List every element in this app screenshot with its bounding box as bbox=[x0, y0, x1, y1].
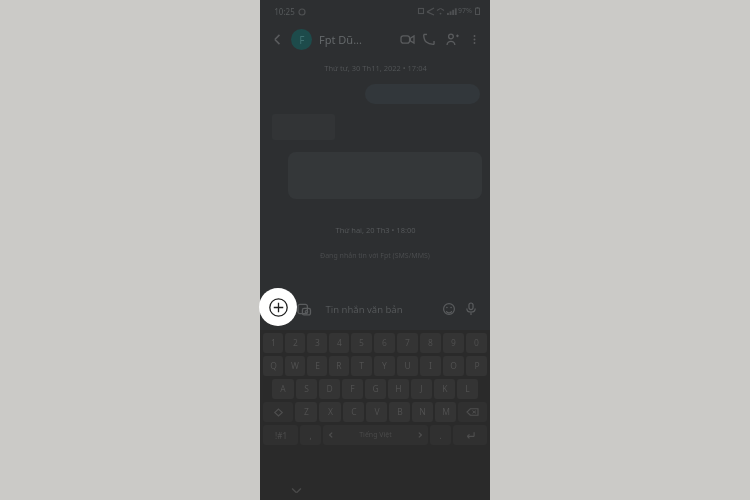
button[interactable]: 4 bbox=[329, 333, 349, 353]
staticText: R bbox=[336, 360, 342, 372]
button[interactable]: M bbox=[435, 402, 456, 422]
staticText: L bbox=[465, 383, 470, 395]
staticText: 0 bbox=[474, 337, 479, 349]
button[interactable]: F bbox=[291, 29, 312, 50]
staticText: Y bbox=[382, 360, 387, 372]
button[interactable]: K bbox=[434, 379, 455, 399]
staticText: C bbox=[351, 406, 357, 418]
staticText: F bbox=[350, 383, 355, 395]
button[interactable]: V bbox=[366, 402, 387, 422]
button[interactable]: Add attachment bbox=[259, 288, 297, 326]
button[interactable]: P bbox=[466, 356, 487, 376]
staticText: K bbox=[442, 383, 448, 395]
button[interactable]: C bbox=[343, 402, 364, 422]
staticText: 2 bbox=[293, 337, 298, 349]
button[interactable]: Emoji bbox=[438, 298, 460, 320]
staticText: Fpt Dũ... bbox=[319, 32, 362, 47]
button[interactable]: I bbox=[420, 356, 441, 376]
staticText: 10:25 bbox=[274, 6, 295, 17]
button[interactable]: Hide keyboard bbox=[287, 481, 305, 499]
staticText: B bbox=[397, 406, 403, 418]
button[interactable]: Gallery bbox=[293, 298, 315, 320]
button[interactable]: Voice input bbox=[460, 298, 482, 320]
button[interactable]: T bbox=[351, 356, 372, 376]
button[interactable]: L bbox=[457, 379, 478, 399]
button[interactable]: A bbox=[272, 379, 294, 399]
button[interactable]: Back bbox=[266, 28, 288, 50]
button[interactable]: 7 bbox=[397, 333, 418, 353]
staticText: Z bbox=[304, 406, 309, 418]
button[interactable]: 3 bbox=[307, 333, 327, 353]
button[interactable]: Add people bbox=[440, 27, 464, 51]
staticText: O bbox=[450, 360, 457, 372]
staticText: 9 bbox=[451, 337, 456, 349]
button[interactable]: Y bbox=[374, 356, 395, 376]
button[interactable]: Tin nhắn văn bản bbox=[325, 303, 438, 316]
button[interactable]: Fpt Dũ... bbox=[319, 32, 362, 47]
staticText: 1 bbox=[271, 337, 276, 349]
button[interactable]: G bbox=[365, 379, 386, 399]
button[interactable]: Call bbox=[418, 28, 440, 50]
button[interactable]: D bbox=[319, 379, 340, 399]
button[interactable]: Shift bbox=[263, 402, 293, 422]
staticText: Thứ hai, 20 Th3 • 18:00 bbox=[335, 225, 416, 235]
button[interactable]: N bbox=[412, 402, 433, 422]
button[interactable]: B bbox=[389, 402, 410, 422]
staticText: Q bbox=[270, 360, 277, 372]
button[interactable]: Enter bbox=[453, 425, 487, 445]
staticText: F bbox=[299, 33, 305, 47]
button[interactable]: More options bbox=[464, 29, 484, 49]
button[interactable]: O bbox=[443, 356, 464, 376]
staticText: G bbox=[372, 383, 379, 395]
button[interactable]: Add bbox=[268, 298, 290, 320]
staticText: J bbox=[420, 383, 423, 395]
button[interactable]: U bbox=[397, 356, 418, 376]
button[interactable]: S bbox=[296, 379, 317, 399]
staticText: !#1 bbox=[275, 430, 287, 441]
button[interactable]: 9 bbox=[443, 333, 464, 353]
staticText: A bbox=[280, 383, 286, 395]
staticText: D bbox=[326, 383, 333, 395]
staticText: 7 bbox=[405, 337, 410, 349]
staticText: 6 bbox=[382, 337, 387, 349]
staticText: W bbox=[291, 360, 299, 372]
staticText: 97% bbox=[458, 6, 472, 16]
staticText: . bbox=[439, 430, 442, 441]
staticText: U bbox=[404, 360, 411, 372]
staticText: Tin nhắn văn bản bbox=[325, 303, 403, 316]
staticText: Thứ tư, 30 Th11, 2022 • 17:04 bbox=[324, 63, 427, 73]
button[interactable]: 6 bbox=[374, 333, 395, 353]
staticText: X bbox=[328, 406, 333, 418]
staticText: H bbox=[395, 383, 402, 395]
button[interactable]: 5 bbox=[351, 333, 372, 353]
button[interactable]: H bbox=[388, 379, 409, 399]
staticText: P bbox=[474, 360, 480, 372]
staticText: N bbox=[419, 406, 426, 418]
button[interactable]: J bbox=[411, 379, 432, 399]
button[interactable]: Tiếng Việt bbox=[323, 425, 428, 445]
button[interactable]: 1 bbox=[263, 333, 283, 353]
staticText: 8 bbox=[428, 337, 433, 349]
button[interactable]: 8 bbox=[420, 333, 441, 353]
staticText: 4 bbox=[337, 337, 342, 349]
button[interactable]: !#1 bbox=[263, 425, 298, 445]
button[interactable]: Backspace bbox=[458, 402, 487, 422]
button[interactable]: Q bbox=[263, 356, 283, 376]
button[interactable]: X bbox=[319, 402, 341, 422]
button[interactable]: Z bbox=[295, 402, 317, 422]
button[interactable]: 0 bbox=[466, 333, 487, 353]
button[interactable]: F bbox=[342, 379, 363, 399]
staticText: M bbox=[442, 406, 450, 418]
button[interactable]: E bbox=[307, 356, 327, 376]
button[interactable]: Video call bbox=[396, 28, 418, 50]
staticText: Đang nhắn tin với Fpt (SMS/MMS) bbox=[320, 251, 430, 261]
button[interactable]: W bbox=[285, 356, 305, 376]
button[interactable]: R bbox=[329, 356, 349, 376]
staticText: T bbox=[359, 360, 364, 372]
button[interactable]: 2 bbox=[285, 333, 305, 353]
